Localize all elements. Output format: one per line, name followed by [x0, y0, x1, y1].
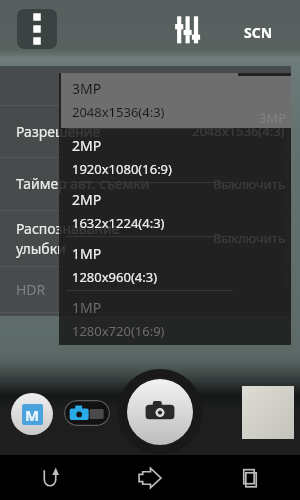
button[interactable]: 1MP: [61, 290, 238, 344]
staticText: 3MP: [259, 109, 287, 127]
button[interactable]: 1MP: [61, 236, 238, 290]
staticText: 2MP: [72, 136, 102, 155]
staticText: 1MP: [72, 298, 102, 317]
button[interactable]: 3MP: [61, 73, 238, 128]
button[interactable]: Home: [100, 455, 200, 500]
staticText: Выключить: [213, 175, 285, 193]
button[interactable]: Back: [0, 455, 100, 500]
staticText: SCN: [244, 23, 273, 42]
button[interactable]: Recent apps: [200, 455, 300, 500]
staticText: Разрешение: [16, 122, 101, 141]
button[interactable]: Разрешение: [0, 105, 291, 157]
staticText: 2048x1536(4:3): [72, 103, 165, 121]
button[interactable]: 2MP: [61, 128, 238, 182]
staticText: 1632x1224(4:3): [72, 214, 165, 232]
button[interactable]: Gallery: [242, 386, 294, 439]
staticText: 2048x1536(4:3): [192, 122, 285, 140]
button[interactable]: Adjust settings: [170, 10, 206, 49]
staticText: 2MP: [72, 190, 102, 209]
button[interactable]: Menu: [17, 9, 57, 49]
staticText: 1MP: [72, 244, 102, 263]
staticText: Распознавание улыбки: [16, 219, 120, 258]
button[interactable]: 2MP: [61, 182, 238, 236]
button[interactable]: Таймер авт. съемки: [0, 157, 291, 210]
staticText: Таймер авт. съемки: [16, 174, 150, 193]
button[interactable]: Shutter: [127, 379, 193, 445]
button[interactable]: Mode dial: [11, 393, 53, 435]
staticText: M: [25, 405, 40, 425]
button[interactable]: SCN: [238, 19, 279, 46]
staticText: HDR: [16, 280, 46, 299]
staticText: 1280x960(4:3): [72, 268, 158, 286]
staticText: 3MP: [72, 79, 102, 98]
button[interactable]: Camera video toggle: [64, 400, 110, 426]
staticText: 1920x1080(16:9): [72, 160, 172, 178]
button[interactable]: Распознавание улыбки: [0, 210, 291, 266]
staticText: 1280x720(16:9): [72, 322, 165, 340]
staticText: Выключить: [213, 229, 285, 247]
button[interactable]: HDR: [0, 266, 291, 312]
